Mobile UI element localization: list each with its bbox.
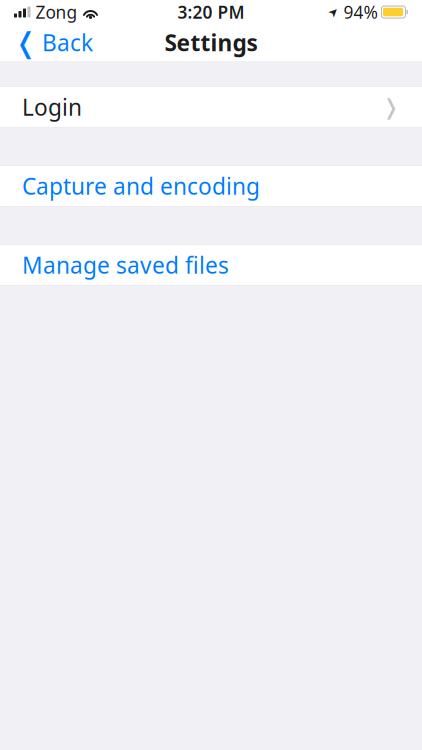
- button[interactable]: Login: [0, 86, 422, 128]
- button[interactable]: Capture and encoding: [0, 165, 422, 207]
- staticText: Capture and encoding: [22, 171, 260, 201]
- staticText: Settings: [164, 27, 257, 57]
- staticText: ❭: [382, 95, 400, 119]
- staticText: 3:20 PM: [177, 0, 244, 23]
- button[interactable]: Manage saved files: [0, 244, 422, 286]
- staticText: Back: [42, 27, 93, 57]
- button[interactable]: ❬: [0, 24, 103, 61]
- staticText: Zong: [35, 0, 77, 23]
- staticText: Manage saved files: [22, 250, 229, 280]
- staticText: Login: [22, 92, 82, 122]
- staticText: ❬: [14, 27, 37, 58]
- staticText: 94%: [343, 0, 377, 23]
- staticText: ➤: [328, 5, 338, 19]
